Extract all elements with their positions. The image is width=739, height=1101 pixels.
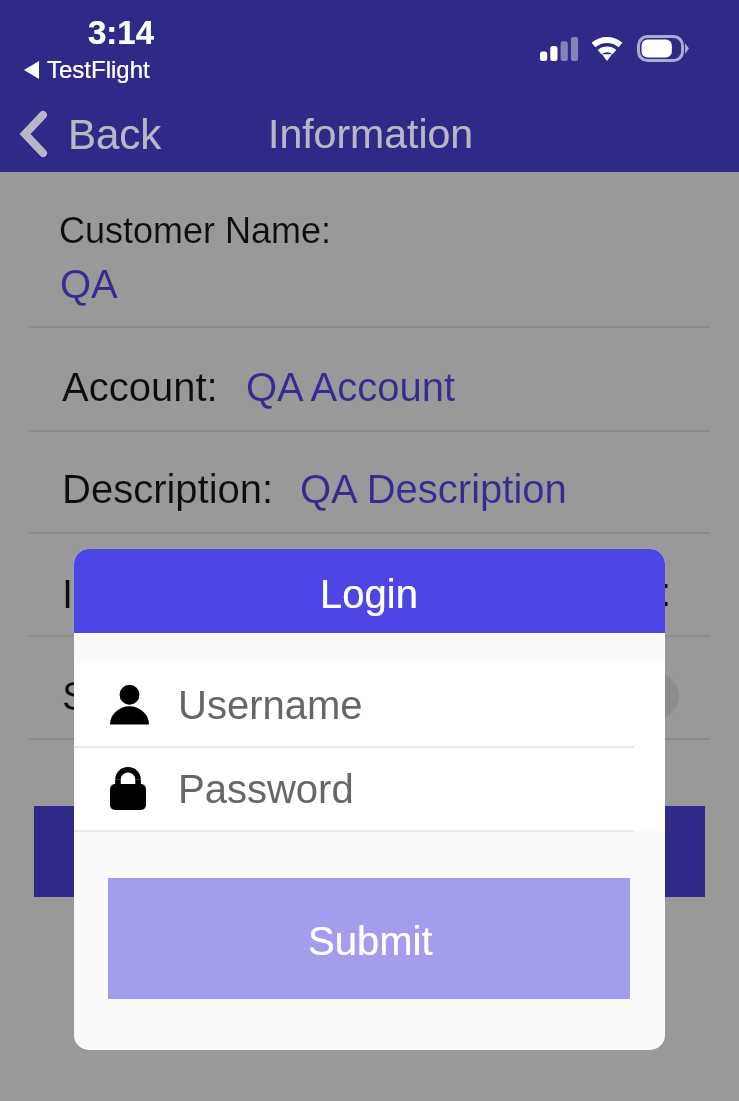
staticText: QA Description bbox=[300, 467, 567, 512]
staticText: QA Account bbox=[246, 365, 456, 410]
staticText: Description: bbox=[62, 467, 274, 512]
button[interactable]: Password bbox=[74, 747, 665, 831]
staticText: Sync bbox=[325, 829, 414, 874]
staticText: Customer Name: bbox=[59, 210, 332, 250]
button[interactable]: Back bbox=[0, 96, 162, 172]
button[interactable]: Sync bbox=[34, 806, 705, 897]
staticText: Account: bbox=[62, 365, 218, 410]
button[interactable]: Submit bbox=[108, 878, 630, 999]
staticText: Submit bbox=[308, 919, 433, 964]
staticText: Created: bbox=[518, 570, 672, 615]
staticText: Id: bbox=[62, 572, 107, 617]
staticText: Back bbox=[68, 111, 162, 158]
staticText: TestFlight bbox=[47, 56, 150, 83]
staticText: QA bbox=[60, 262, 118, 307]
button[interactable]: Back to TestFlight bbox=[24, 56, 150, 83]
button[interactable]: Status bbox=[633, 673, 679, 719]
staticText: 3:14 bbox=[88, 14, 155, 51]
staticText: Password bbox=[178, 767, 354, 812]
staticText: Login bbox=[320, 572, 418, 617]
staticText: Information bbox=[268, 111, 474, 157]
staticText: Username bbox=[178, 683, 363, 728]
button[interactable]: Username bbox=[74, 663, 665, 747]
staticText: Status: bbox=[62, 674, 187, 719]
